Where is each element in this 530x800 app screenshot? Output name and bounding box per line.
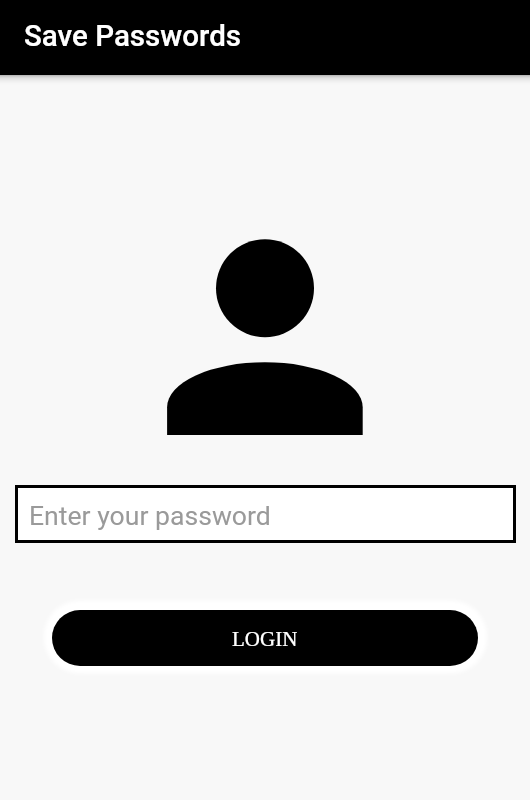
button[interactable]: Enter your password bbox=[15, 485, 516, 543]
staticText: Save Passwords bbox=[24, 19, 242, 54]
staticText: LOGIN bbox=[232, 627, 298, 650]
other: Account avatar bbox=[0, 0, 530, 800]
button[interactable]: LOGIN bbox=[52, 610, 478, 666]
staticText: Enter your password bbox=[29, 500, 271, 531]
